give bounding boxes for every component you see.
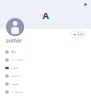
button[interactable]: Website	[5, 66, 91, 70]
button[interactable]: Location	[5, 74, 91, 78]
staticText: author@mail.com	[11, 59, 23, 61]
staticText: Bio	[11, 50, 16, 54]
button[interactable]: Joined	[5, 82, 91, 86]
staticText: +1 555 0199	[11, 91, 22, 93]
button[interactable]: +1 555 0199	[5, 90, 91, 94]
button[interactable]: author@mail.com	[5, 58, 91, 62]
button[interactable]: Bio	[5, 50, 91, 54]
button[interactable]: Edit	[71, 31, 86, 38]
staticText: Joined	[11, 82, 17, 86]
staticText: Website	[11, 67, 18, 69]
staticText: Location	[11, 74, 19, 77]
staticText: Edit	[77, 32, 83, 37]
staticText: author	[6, 38, 22, 44]
staticText: A	[42, 9, 48, 22]
button[interactable]: More	[82, 1, 89, 8]
